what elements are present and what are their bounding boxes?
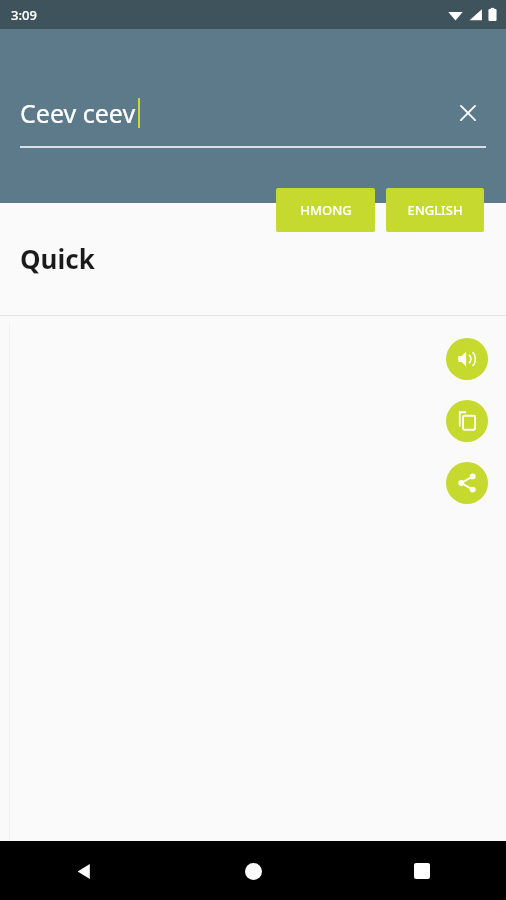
button[interactable]: Listen: [446, 338, 488, 380]
button[interactable]: Back: [60, 847, 108, 895]
button[interactable]: Recent apps: [398, 847, 446, 895]
staticText: Quick: [20, 241, 95, 276]
button[interactable]: Home: [229, 847, 277, 895]
button[interactable]: HMONG: [276, 188, 375, 232]
button[interactable]: Clear text: [450, 95, 486, 131]
button[interactable]: ENGLISH: [386, 188, 484, 232]
staticText: HMONG: [300, 201, 352, 219]
button[interactable]: Copy: [446, 400, 488, 442]
staticText: Ceev ceev: [20, 96, 136, 130]
staticText: 3:09: [11, 6, 37, 24]
button[interactable]: Share: [446, 462, 488, 504]
staticText: ENGLISH: [407, 201, 463, 219]
